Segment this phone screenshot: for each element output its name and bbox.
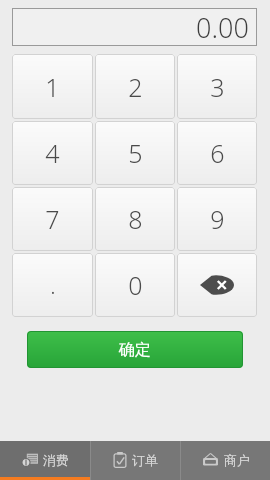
button[interactable]: 5 [95,121,175,185]
button[interactable]: 9 [177,187,257,251]
button[interactable]: 消费 [0,441,90,480]
staticText: . [50,270,56,300]
button[interactable]: 订单 [91,441,180,480]
staticText: 9 [210,202,225,236]
button[interactable]: 8 [95,187,175,251]
staticText: 4 [45,136,60,170]
button[interactable]: 4 [12,121,93,185]
button[interactable]: 7 [12,187,93,251]
staticText: 商户 [224,452,250,468]
staticText: 0.00 [196,9,249,46]
staticText: 2 [128,70,143,104]
staticText: 0 [128,268,143,302]
button[interactable]: 确定 [27,331,243,368]
staticText: 3 [210,70,225,104]
staticText: 1 [45,70,60,104]
button[interactable]: 商户 [181,441,270,480]
button[interactable]: 0.00 [12,8,257,46]
button[interactable]: 0 [95,253,175,317]
staticText: 6 [210,136,225,170]
staticText: 确定 [119,340,151,360]
button[interactable]: 6 [177,121,257,185]
staticText: 8 [128,202,143,236]
button[interactable]: 2 [95,54,175,119]
staticText: 7 [45,202,60,236]
button[interactable]: 3 [177,54,257,119]
staticText: 5 [128,136,143,170]
staticText: 订单 [132,452,158,468]
button[interactable]: . [12,253,93,317]
staticText: 消费 [43,452,69,468]
button[interactable]: Backspace [177,253,257,317]
button[interactable]: 1 [12,54,93,119]
